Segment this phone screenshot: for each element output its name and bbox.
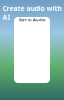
staticText: Create audio with AI: [2, 4, 61, 22]
staticText: Sort in Audio: [19, 17, 45, 22]
